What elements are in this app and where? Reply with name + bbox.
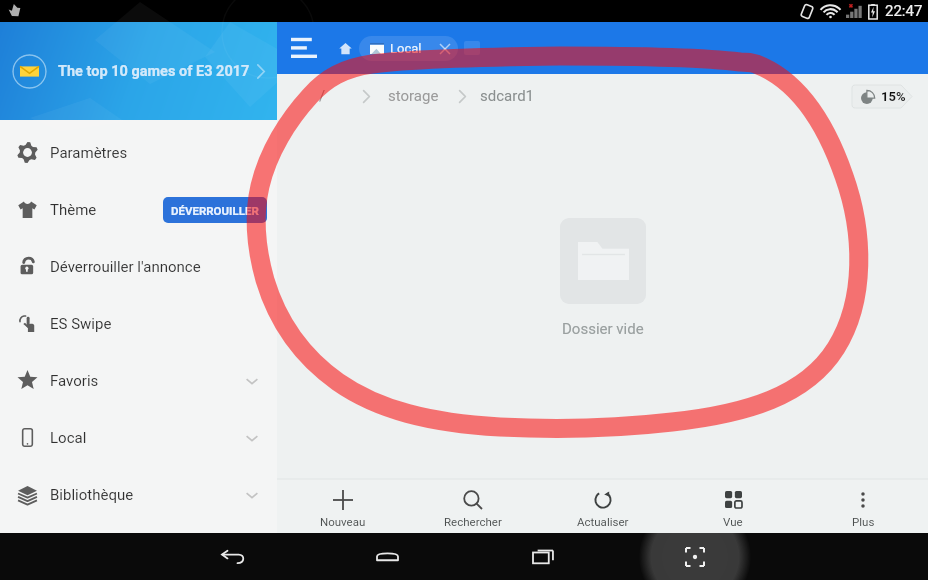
button[interactable]: The top 10 games of E3 2017 xyxy=(0,22,277,120)
staticText: Vue xyxy=(723,515,743,528)
staticText: Paramètres xyxy=(50,144,128,162)
staticText: Déverrouiller l'annonce xyxy=(50,258,201,276)
button[interactable]: Local xyxy=(0,409,277,466)
staticText: Actualiser xyxy=(577,515,629,528)
button[interactable]: Actualiser xyxy=(538,479,668,533)
button[interactable]: Home xyxy=(357,533,417,580)
button[interactable]: Bibliothèque xyxy=(0,466,277,523)
button[interactable]: Favoris xyxy=(0,352,277,409)
staticText: Thème xyxy=(50,201,97,219)
button[interactable]: Screenshot xyxy=(665,533,725,580)
button[interactable]: DÉVERROUILLER xyxy=(171,197,259,223)
button[interactable]: Plus xyxy=(798,479,928,533)
staticText: Favoris xyxy=(50,372,99,390)
staticText: The top 10 games of E3 2017 xyxy=(58,63,250,80)
button[interactable]: Rechercher xyxy=(408,479,538,533)
staticText: Plus xyxy=(852,515,875,528)
staticText: 15% xyxy=(881,89,906,104)
button[interactable]: Nouveau xyxy=(277,479,408,533)
button[interactable]: / xyxy=(319,87,326,105)
button[interactable]: Vue xyxy=(668,479,798,533)
button[interactable]: Home xyxy=(333,36,357,60)
staticText: Bibliothèque xyxy=(50,486,134,504)
staticText: Dossier vide xyxy=(562,320,644,338)
staticText: Nouveau xyxy=(320,515,366,528)
button[interactable]: Back xyxy=(202,533,262,580)
button[interactable]: Menu xyxy=(286,30,322,66)
other: Close tab xyxy=(440,44,450,54)
button[interactable]: sdcard1 xyxy=(480,87,535,105)
button[interactable]: Paramètres xyxy=(0,124,277,181)
button[interactable]: Déverrouiller l'annonce xyxy=(0,238,277,295)
staticText: 22:47 xyxy=(885,2,923,20)
staticText: Rechercher xyxy=(444,515,502,528)
button[interactable]: 15% xyxy=(852,85,913,108)
staticText: Local xyxy=(50,429,87,447)
staticText: ES Swipe xyxy=(50,315,112,333)
button[interactable]: storage xyxy=(388,87,439,105)
button[interactable]: New tab xyxy=(464,41,480,55)
button[interactable]: ES Swipe xyxy=(0,295,277,352)
button[interactable]: Thème xyxy=(0,181,277,238)
staticText: Local xyxy=(390,41,422,56)
staticText: DÉVERROUILLER xyxy=(171,204,259,217)
button[interactable]: Recents xyxy=(513,533,573,580)
button[interactable]: Local xyxy=(359,36,458,61)
